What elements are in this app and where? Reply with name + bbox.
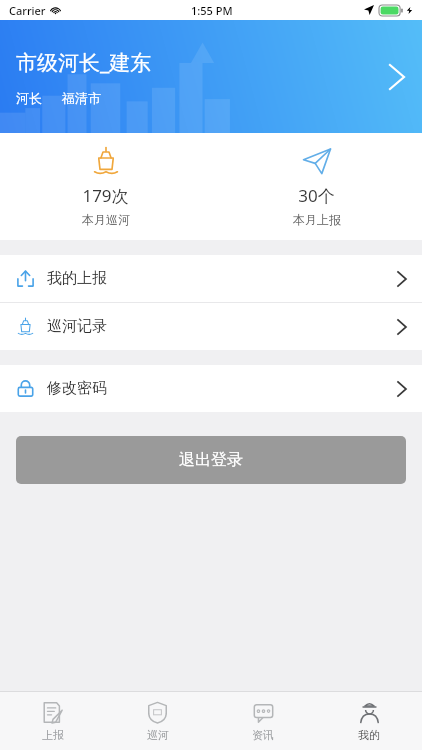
staticText: 1:55 PM	[191, 3, 233, 18]
staticText: 福清市	[62, 90, 101, 106]
button[interactable]: 本月上报	[211, 140, 422, 233]
button[interactable]: 退出登录	[16, 436, 406, 484]
button[interactable]: 本月巡河	[0, 140, 211, 233]
button[interactable]: 市级河长_建东	[0, 20, 422, 133]
button[interactable]: 修改密码	[0, 365, 422, 412]
button[interactable]: 上报	[0, 692, 105, 750]
button[interactable]: 巡河	[105, 692, 210, 750]
staticText: 修改密码	[47, 379, 107, 398]
staticText: 退出登录	[179, 450, 243, 470]
staticText: 我的上报	[47, 269, 107, 288]
button[interactable]: 我的	[316, 692, 422, 750]
staticText: 30个	[298, 184, 335, 207]
staticText: 巡河	[147, 728, 169, 742]
staticText: 本月巡河	[82, 212, 130, 227]
other: 本月巡河	[91, 146, 121, 176]
button[interactable]: 我的上报	[0, 255, 422, 302]
button[interactable]: 资讯	[210, 692, 316, 750]
staticText: 上报	[42, 728, 64, 742]
staticText: Carrier	[9, 3, 46, 18]
staticText: 我的	[358, 728, 380, 742]
staticText: 179次	[82, 184, 129, 207]
staticText: 本月上报	[293, 212, 341, 227]
other: 本月上报	[302, 146, 332, 176]
staticText: 河长	[16, 90, 42, 106]
staticText: 市级河长_建东	[16, 48, 152, 77]
staticText: 资讯	[252, 728, 274, 742]
staticText: 巡河记录	[47, 317, 107, 336]
button[interactable]: 巡河记录	[0, 303, 422, 350]
